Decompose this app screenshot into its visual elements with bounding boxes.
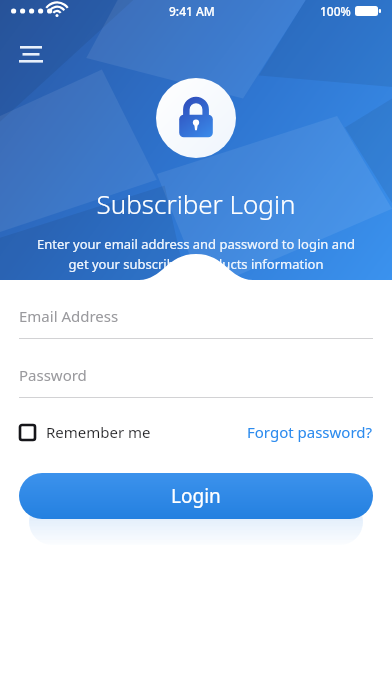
button[interactable]: Forgot password? bbox=[247, 418, 373, 446]
staticText: Email Address bbox=[19, 306, 119, 326]
button[interactable]: Email Address bbox=[19, 306, 373, 339]
staticText: Enter your email address and password to… bbox=[26, 235, 366, 273]
button[interactable]: Remember me bbox=[19, 418, 152, 446]
staticText: 9:41 AM bbox=[169, 3, 215, 19]
staticText: Subscriber Login bbox=[0, 186, 392, 221]
staticText: Remember me bbox=[46, 422, 151, 442]
button[interactable]: Login bbox=[19, 473, 373, 519]
staticText: 100% bbox=[320, 3, 351, 19]
button[interactable]: Open navigation menu bbox=[10, 32, 54, 76]
staticText: Password bbox=[19, 365, 87, 385]
staticText: Forgot password? bbox=[247, 422, 373, 442]
button[interactable]: Password bbox=[19, 365, 373, 398]
staticText: Login bbox=[171, 483, 221, 509]
